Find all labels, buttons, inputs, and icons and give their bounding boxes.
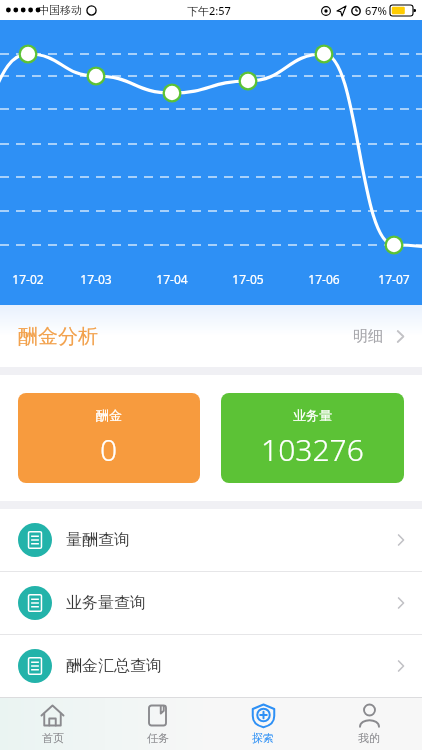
other: 任务 — [145, 703, 170, 728]
staticText: 103276 — [261, 429, 364, 470]
staticText: 量酬查询 — [66, 530, 130, 550]
staticText: 业务量 — [293, 407, 332, 423]
other: 我的 — [357, 703, 382, 728]
button[interactable]: 量酬查询 — [0, 509, 422, 571]
staticText: 下午2:57 — [187, 3, 231, 18]
button[interactable]: 酬金汇总查询 — [0, 635, 422, 697]
other: 探索 — [251, 703, 276, 728]
button[interactable]: 探索 — [210, 698, 316, 750]
button[interactable]: 酬金 — [18, 393, 200, 483]
button[interactable]: 我的 — [316, 698, 422, 750]
button[interactable]: 首页 — [0, 698, 105, 750]
staticText: 首页 — [42, 731, 64, 745]
staticText: 17-07 — [368, 271, 420, 287]
staticText: 酬金分析 — [18, 324, 98, 349]
staticText: 中国移动 — [38, 3, 82, 17]
other: 首页 — [40, 703, 65, 728]
staticText: 17-03 — [70, 271, 122, 287]
staticText: 我的 — [358, 731, 380, 745]
staticText: 17-05 — [222, 271, 274, 287]
staticText: 17-06 — [298, 271, 350, 287]
button[interactable]: 酬金分析 — [0, 305, 422, 367]
staticText: 67% — [365, 3, 387, 18]
staticText: 明细 — [353, 327, 383, 346]
staticText: 探索 — [252, 731, 274, 745]
staticText: 酬金汇总查询 — [66, 656, 162, 676]
staticText: 17-02 — [2, 271, 54, 287]
button[interactable]: 业务量 — [221, 393, 404, 483]
staticText: 17-04 — [146, 271, 198, 287]
button[interactable]: 任务 — [105, 698, 210, 750]
staticText: 酬金 — [96, 407, 122, 423]
staticText: 业务量查询 — [66, 593, 146, 613]
button[interactable]: 业务量查询 — [0, 572, 422, 634]
staticText: 任务 — [147, 731, 169, 745]
staticText: 0 — [100, 429, 118, 470]
